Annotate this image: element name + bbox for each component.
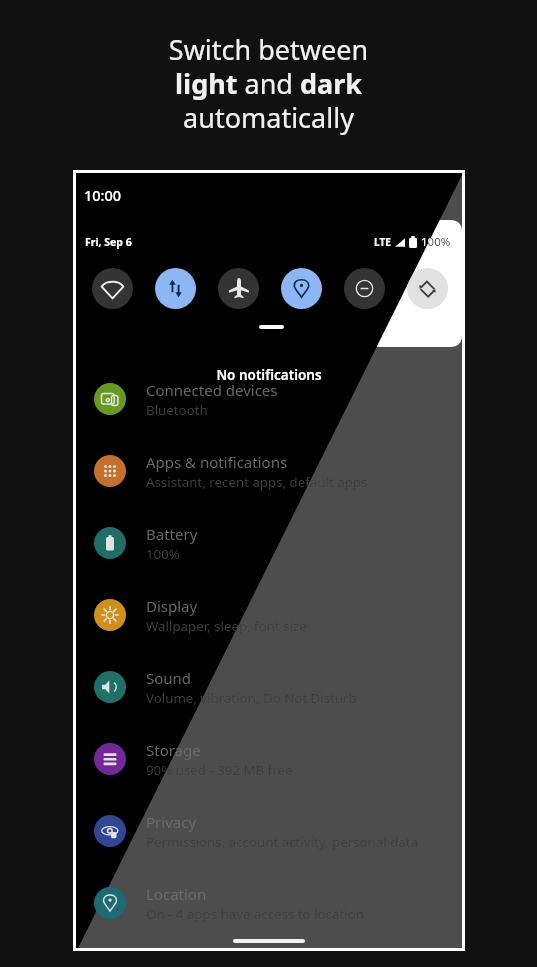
button[interactable]: Storage [76, 723, 462, 795]
staticText: 10:00 [84, 185, 122, 205]
button[interactable]: Do not disturb [344, 268, 385, 309]
staticText: 90% used - 392 MB free [146, 761, 293, 779]
button[interactable]: Connected devices [76, 363, 462, 435]
staticText: 90% used - 392 MB free [146, 761, 293, 779]
staticText: Volume, vibration, Do Not Disturb [146, 689, 357, 707]
staticText: Wallpaper, sleep, font size [146, 617, 307, 635]
button[interactable]: Auto rotate [407, 268, 448, 309]
staticText: Location [146, 884, 207, 904]
button[interactable]: Location [281, 268, 322, 309]
button[interactable]: Airplane mode [218, 268, 259, 309]
staticText: Volume, vibration, Do Not Disturb [146, 689, 357, 707]
staticText: Location [146, 884, 207, 904]
button[interactable]: Location [76, 867, 462, 939]
staticText: LTE [374, 235, 391, 249]
staticText: Connected devices [146, 380, 278, 400]
staticText: Battery [146, 524, 198, 544]
staticText: Permissions, account activity, personal … [146, 833, 419, 851]
button[interactable]: Privacy [76, 795, 462, 867]
staticText: Bluetooth [146, 401, 208, 419]
staticText: Sound [146, 668, 192, 688]
button[interactable]: Wi-Fi [92, 268, 133, 309]
staticText: Wallpaper, sleep, font size [146, 617, 307, 635]
staticText: Fri, Sep 6 [85, 235, 132, 249]
button[interactable]: Storage [76, 723, 462, 795]
staticText: Display [146, 596, 198, 616]
staticText: LTE [374, 235, 391, 249]
button[interactable]: Airplane mode [218, 268, 259, 309]
staticText: Display [146, 596, 198, 616]
button[interactable]: Airplane mode [218, 268, 259, 309]
staticText: Connected devices [146, 380, 278, 400]
button[interactable]: Sound [76, 651, 462, 723]
staticText: No notifications [76, 366, 462, 384]
staticText: Connected devices [146, 380, 278, 400]
button[interactable]: Apps & notifications [76, 435, 462, 507]
button[interactable]: Location [281, 268, 322, 309]
staticText: 10:00 [84, 185, 122, 205]
staticText: 100% [146, 545, 180, 563]
button[interactable]: Auto rotate [407, 268, 448, 309]
button[interactable]: Do not disturb [344, 268, 385, 309]
button[interactable]: Storage [76, 723, 462, 795]
button[interactable]: Apps & notifications [76, 435, 462, 507]
button[interactable]: Mobile data [155, 268, 196, 309]
button[interactable]: Mobile data [155, 268, 196, 309]
button[interactable]: Battery [76, 507, 462, 579]
button[interactable]: Mobile data [155, 268, 196, 309]
button[interactable]: Sound [76, 651, 462, 723]
button[interactable]: Privacy [76, 795, 462, 867]
staticText: No notifications [76, 366, 462, 384]
staticText: Sound [146, 668, 192, 688]
button[interactable]: Wi-Fi [92, 268, 133, 309]
button[interactable]: Connected devices [76, 363, 462, 435]
staticText: Storage [146, 740, 201, 760]
staticText: 100% [421, 234, 451, 250]
button[interactable]: Apps & notifications [76, 435, 462, 507]
staticText: Storage [146, 740, 201, 760]
staticText: Assistant, recent apps, default apps [146, 473, 368, 491]
staticText: Storage [146, 740, 201, 760]
button[interactable]: Privacy [76, 795, 462, 867]
button[interactable]: Wi-Fi [92, 268, 133, 309]
button[interactable]: Display [76, 579, 462, 651]
button[interactable]: Battery [76, 507, 462, 579]
staticText: 100% [421, 234, 451, 250]
staticText: Fri, Sep 6 [85, 235, 132, 249]
staticText: Apps & notifications [146, 452, 288, 472]
staticText: Permissions, account activity, personal … [146, 833, 419, 851]
staticText: 100% [421, 234, 451, 250]
staticText: Apps & notifications [146, 452, 288, 472]
button[interactable]: Connected devices [76, 363, 462, 435]
staticText: Privacy [146, 812, 197, 832]
button[interactable]: Location [281, 268, 322, 309]
staticText: Assistant, recent apps, default apps [146, 473, 368, 491]
staticText: 10:00 [84, 185, 122, 205]
staticText: Location [146, 884, 207, 904]
staticText: Sound [146, 668, 192, 688]
staticText: On - 4 apps have access to location [146, 905, 364, 923]
button[interactable]: Do not disturb [344, 268, 385, 309]
staticText: Display [146, 596, 198, 616]
button[interactable]: Battery [76, 507, 462, 579]
staticText: Assistant, recent apps, default apps [146, 473, 368, 491]
button[interactable]: Location [76, 867, 462, 939]
staticText: Apps & notifications [146, 452, 288, 472]
staticText: Wallpaper, sleep, font size [146, 617, 307, 635]
staticText: Battery [146, 524, 198, 544]
staticText: Bluetooth [146, 401, 208, 419]
button[interactable]: Location [76, 867, 462, 939]
staticText: No notifications [76, 366, 462, 384]
staticText: Volume, vibration, Do Not Disturb [146, 689, 357, 707]
button[interactable]: Display [76, 579, 462, 651]
button[interactable]: Sound [76, 651, 462, 723]
staticText: LTE [374, 235, 391, 249]
staticText: 100% [146, 545, 180, 563]
staticText: Permissions, account activity, personal … [146, 833, 419, 851]
staticText: On - 4 apps have access to location [146, 905, 364, 923]
button[interactable]: Auto rotate [407, 268, 448, 309]
staticText: Battery [146, 524, 198, 544]
staticText: Fri, Sep 6 [85, 235, 132, 249]
button[interactable]: Display [76, 579, 462, 651]
staticText: 100% [146, 545, 180, 563]
